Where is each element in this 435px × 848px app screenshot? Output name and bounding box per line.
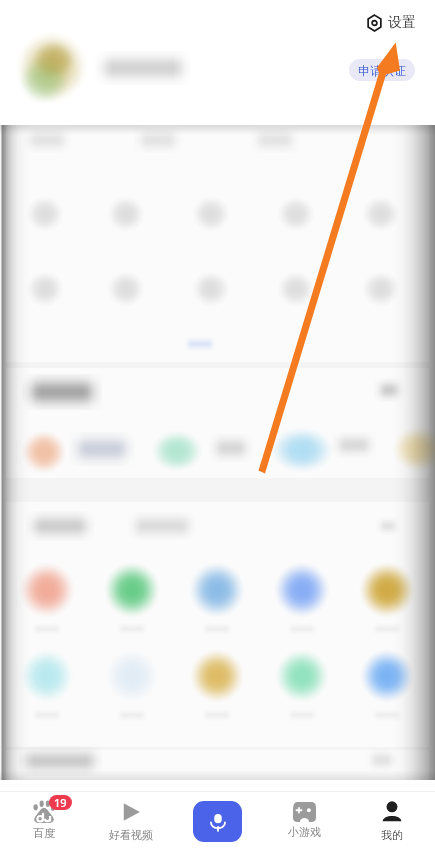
button[interactable]: 语音搜索 [193,801,242,842]
staticText: 申请认证 [358,63,406,78]
staticText: 好看视频 [109,828,153,842]
button[interactable]: 我的 [348,792,435,848]
button[interactable]: 小游戏 [261,792,348,848]
staticText: 19 [54,795,67,810]
button[interactable]: 19 [0,792,87,848]
button[interactable]: 好看视频 [87,792,174,848]
staticText: 小游戏 [288,825,321,839]
button[interactable]: 申请认证 [349,59,415,81]
staticText: 百度 [33,826,55,840]
staticText: 设置 [388,14,416,32]
button[interactable]: 设置 [362,11,420,35]
staticText: 我的 [381,828,403,842]
